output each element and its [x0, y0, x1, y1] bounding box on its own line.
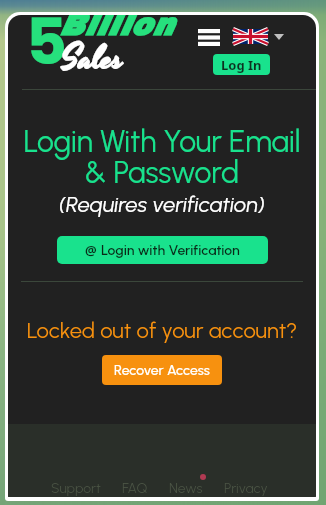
staticText: Login with Verification: [101, 242, 240, 259]
staticText: Recover Access: [114, 362, 210, 379]
staticText: Privacy: [224, 480, 268, 497]
button[interactable]: Support: [50, 480, 102, 497]
button[interactable]: News: [168, 480, 204, 497]
staticText: Billion: [59, 15, 174, 42]
staticText: (Requires verification): [8, 191, 316, 217]
staticText: News: [169, 480, 203, 497]
staticText: Login With Your Email & Password: [10, 123, 314, 191]
staticText: FAQ: [122, 480, 148, 497]
button[interactable]: Log In: [213, 54, 270, 75]
staticText: Locked out of your account?: [8, 317, 316, 343]
button[interactable]: Recover Access: [102, 355, 222, 385]
button[interactable]: Menu: [192, 23, 226, 52]
staticText: 5: [26, 15, 67, 68]
button[interactable]: Privacy: [223, 480, 269, 497]
button[interactable]: @: [57, 236, 268, 264]
staticText: @: [85, 241, 97, 259]
staticText: Sales: [61, 36, 123, 84]
staticText: Support: [51, 480, 101, 497]
staticText: Log In: [221, 56, 262, 74]
button[interactable]: Select language: [233, 29, 284, 44]
button[interactable]: FAQ: [121, 480, 149, 497]
